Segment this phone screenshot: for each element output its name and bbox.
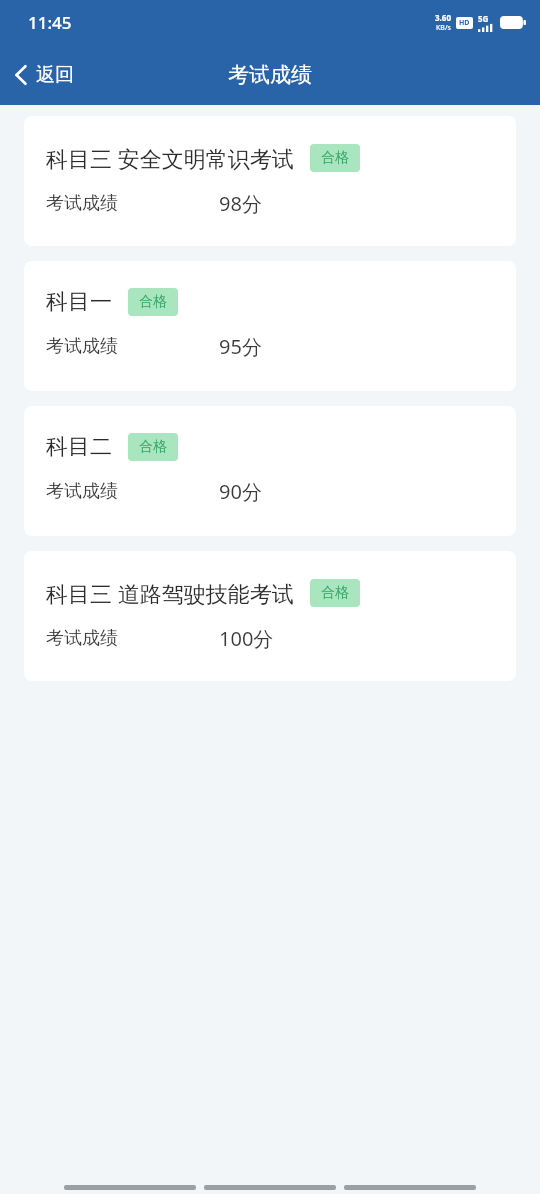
button[interactable]: 科目三 道路驾驶技能考试: [24, 551, 516, 681]
staticText: 90分: [219, 478, 262, 505]
staticText: 科目一: [46, 288, 112, 316]
button[interactable]: 科目二: [24, 406, 516, 536]
staticText: 98分: [219, 190, 262, 217]
button[interactable]: Home: [204, 1185, 336, 1190]
staticText: 5G: [478, 13, 489, 24]
staticText: 考试成绩: [228, 62, 312, 88]
staticText: 科目二: [46, 433, 112, 461]
staticText: 100分: [219, 625, 274, 652]
staticText: 3.60: [435, 12, 451, 23]
staticText: 科目三 安全文明常识考试: [46, 143, 294, 173]
staticText: 考试成绩: [46, 192, 118, 215]
staticText: 科目三 道路驾驶技能考试: [46, 578, 294, 608]
staticText: 返回: [36, 63, 74, 87]
button[interactable]: Back: [344, 1185, 476, 1190]
other: 返回: [14, 64, 28, 86]
button[interactable]: Recents: [64, 1185, 196, 1190]
staticText: KB/s: [436, 23, 451, 33]
staticText: 考试成绩: [46, 335, 118, 358]
staticText: HD: [459, 18, 470, 28]
staticText: 合格: [321, 584, 349, 602]
staticText: 95分: [219, 333, 262, 360]
staticText: 考试成绩: [46, 480, 118, 503]
button[interactable]: 返回: [0, 57, 88, 93]
button[interactable]: 科目三 安全文明常识考试: [24, 116, 516, 246]
button[interactable]: 科目一: [24, 261, 516, 391]
staticText: 合格: [321, 149, 349, 167]
staticText: 11:45: [28, 11, 72, 34]
staticText: 合格: [139, 438, 167, 456]
staticText: 考试成绩: [46, 627, 118, 650]
staticText: 合格: [139, 293, 167, 311]
